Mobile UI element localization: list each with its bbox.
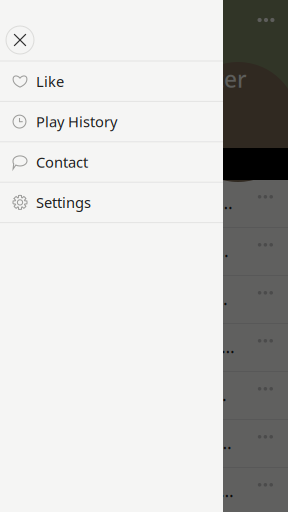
button[interactable]: Play History	[0, 102, 223, 142]
staticText: 01 Tune Up and an Introduction	[16, 191, 237, 214]
staticText: Contact	[36, 152, 88, 172]
staticText: Play History	[36, 112, 117, 131]
button[interactable]: 01 Tune Up and an Introduction	[0, 180, 288, 228]
button[interactable]: Close menu	[0, 20, 40, 60]
staticText: 05 Switching Between Chords Smoothly in …	[16, 383, 237, 406]
staticText: 03 Learning Your First Open Chord Shapes	[16, 287, 237, 310]
staticText: 06 Practicing the Full Barre Chord Shape…	[16, 431, 237, 454]
staticText: 04 Down-Up Strumming Patterns for Beginn…	[16, 335, 237, 358]
staticText: Information	[16, 152, 121, 176]
button[interactable]: Like	[0, 61, 223, 102]
staticText: Like	[36, 71, 64, 91]
button[interactable]: 06 Practicing the Full Barre Chord Shape…	[0, 420, 288, 468]
staticText: Settings	[36, 193, 91, 212]
staticText: 02 Holding the Pick and Basics of Postur…	[16, 239, 237, 262]
button[interactable]: More options	[244, 3, 288, 37]
staticText: 07 Playing a Simple Melody Lead and Chor…	[16, 479, 237, 502]
button[interactable]: 05 Switching Between Chords Smoothly in …	[0, 372, 288, 420]
button[interactable]: 04 Down-Up Strumming Patterns for Beginn…	[0, 324, 288, 372]
button[interactable]: 02 Holding the Pick and Basics of Postur…	[0, 228, 288, 276]
button[interactable]: Contact	[0, 142, 223, 183]
staticText: Guitar Lesson Starter	[16, 64, 247, 94]
button[interactable]: 03 Learning Your First Open Chord Shapes	[0, 276, 288, 324]
button[interactable]: 07 Playing a Simple Melody Lead and Chor…	[0, 468, 288, 512]
button[interactable]: Settings	[0, 183, 223, 223]
